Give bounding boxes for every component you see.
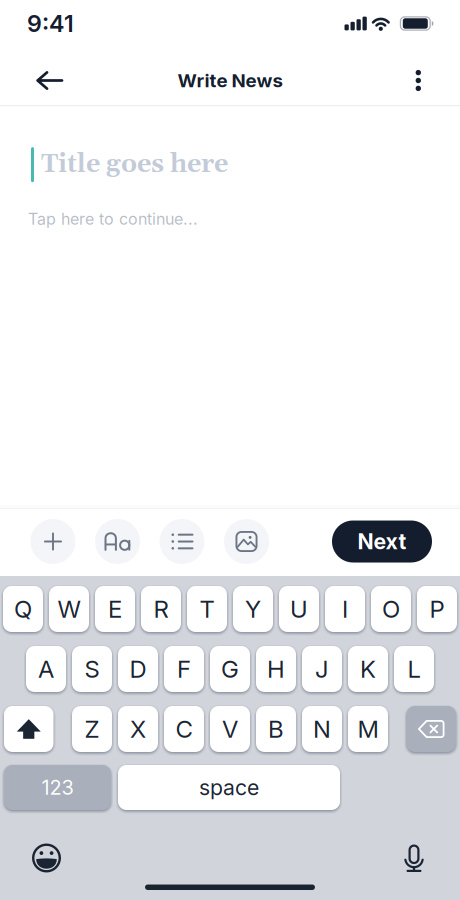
staticText: F [177,654,191,683]
staticText: Next [357,529,406,554]
button[interactable] [406,706,456,752]
button[interactable]: M [348,706,388,752]
staticText: Title goes here [41,149,228,181]
button[interactable]: W [49,586,89,632]
button[interactable]: V [210,706,250,752]
staticText: Z [84,714,99,743]
staticText: T [199,594,214,623]
button[interactable]: H [256,646,296,692]
staticText: A [38,654,54,683]
staticText: N [313,714,331,743]
button[interactable]: G [210,646,250,692]
staticText: V [222,714,238,743]
staticText: J [315,654,329,683]
button[interactable]: O [371,586,411,632]
button[interactable] [30,519,75,564]
button[interactable]: I [325,586,365,632]
staticText: G [221,654,239,683]
button[interactable]: space [118,765,340,810]
staticText: U [290,594,308,623]
button[interactable]: L [394,646,434,692]
staticText: C [175,714,192,743]
staticText: Y [245,594,261,623]
staticText: I [342,594,348,623]
staticText: S [84,654,99,683]
staticText: 9:41 [27,9,74,38]
button[interactable]: 123 [4,765,111,810]
button[interactable]: E [95,586,135,632]
button[interactable]: Z [72,706,112,752]
button[interactable] [403,843,460,872]
button[interactable] [4,706,53,752]
staticText: Q [14,594,32,623]
button[interactable]: B [256,706,296,752]
staticText: E [108,594,122,623]
staticText: W [57,594,80,623]
button[interactable]: A [26,646,66,692]
staticText: O [382,594,400,623]
staticText: D [129,654,146,683]
button[interactable]: S [72,646,112,692]
button[interactable]: N [302,706,342,752]
button[interactable] [159,519,204,564]
button[interactable] [95,519,140,564]
button[interactable]: P [417,586,457,632]
staticText: space [199,775,259,800]
button[interactable]: K [348,646,388,692]
staticText: P [429,594,444,623]
button[interactable] [416,56,460,105]
button[interactable] [0,53,63,108]
button[interactable]: F [164,646,204,692]
staticText: K [360,654,376,683]
button[interactable] [0,843,61,872]
staticText: Write News [177,69,282,92]
staticText: H [267,654,285,683]
button[interactable]: C [164,706,204,752]
button[interactable]: Y [233,586,273,632]
staticText: B [268,714,284,743]
staticText: 123 [41,775,73,800]
button[interactable]: J [302,646,342,692]
button[interactable]: U [279,586,319,632]
button[interactable]: Next [332,520,432,562]
button[interactable] [224,519,269,564]
button[interactable]: D [118,646,158,692]
staticText: X [130,714,146,743]
button[interactable]: X [118,706,158,752]
staticText: L [407,654,420,683]
staticText: Tap here to continue... [28,209,198,229]
button[interactable]: R [141,586,181,632]
staticText: R [153,594,168,623]
button[interactable]: T [187,586,227,632]
button[interactable]: Q [3,586,43,632]
staticText: M [357,714,378,743]
